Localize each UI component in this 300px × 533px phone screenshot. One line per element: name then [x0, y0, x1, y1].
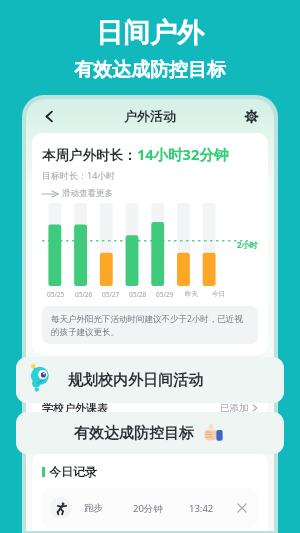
button[interactable]: 有效达成防控目标 [16, 412, 284, 454]
button[interactable]: 跑步 [42, 488, 258, 528]
staticText: 今日记录 [49, 464, 97, 479]
button[interactable]: 设置 [240, 105, 262, 127]
button[interactable]: 删除 [234, 500, 250, 516]
staticText: 05/28 [129, 290, 147, 299]
staticText: 05/27 [102, 290, 120, 299]
staticText: 规划校内外日间活动 [68, 371, 203, 390]
staticText: 户外活动 [124, 108, 176, 124]
staticText: 2小时 [237, 239, 258, 250]
staticText: 有效达成防控目标 [74, 424, 194, 443]
staticText: 已添加 [220, 402, 249, 414]
staticText: 05/26 [75, 290, 93, 299]
staticText: 13:42 [189, 502, 214, 515]
staticText: 05/29 [156, 290, 174, 299]
staticText: 滑动查看更多 [62, 188, 113, 199]
staticText: 日间户外 [96, 16, 204, 50]
button[interactable]: 学校户外课表 [32, 363, 268, 417]
staticText: 05/25 [47, 290, 65, 299]
button[interactable]: 返回 [38, 105, 60, 127]
staticText: 昨天 [185, 290, 198, 298]
staticText: 每天户外阳光下活动时间建议不少于2小时，已近视的孩子建议更长。 [51, 313, 249, 337]
staticText: 20分钟 [133, 502, 163, 515]
staticText: 本周户外时长： [42, 147, 137, 164]
staticText: 有效达成防控目标 [74, 58, 226, 82]
staticText: 学校户外课表 [42, 401, 108, 415]
other: 吉祥物 [26, 365, 56, 395]
staticText: 跑步 [84, 502, 103, 514]
button[interactable]: 吉祥物 [16, 357, 284, 403]
staticText: 今日 [212, 290, 225, 298]
staticText: 目标时长：14小时 [42, 169, 116, 181]
other: 点赞 [202, 421, 226, 445]
staticText: 14小时32分钟 [137, 144, 229, 164]
